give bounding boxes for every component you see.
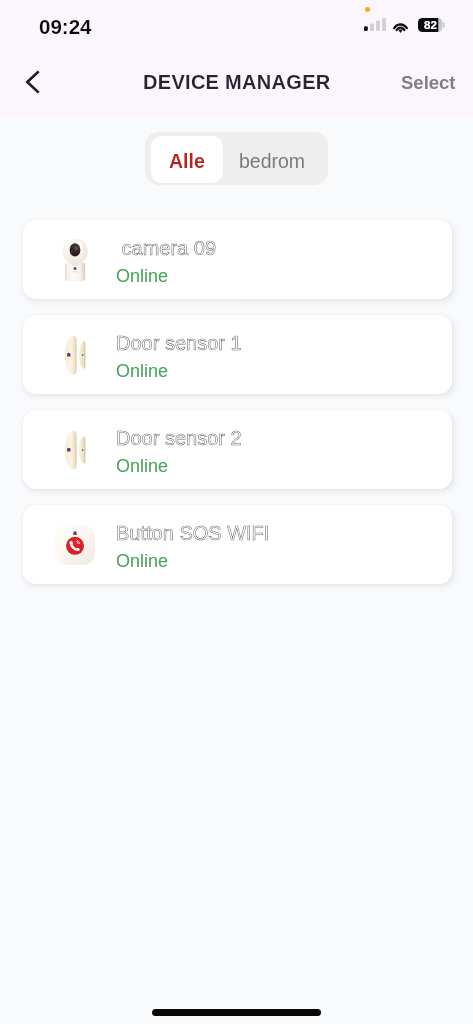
staticText: Online [116, 266, 169, 286]
staticText: Door sensor 2 [116, 427, 242, 449]
button[interactable]: camera 09 [23, 220, 452, 299]
staticText: 09:24 [39, 15, 92, 38]
staticText: Online [116, 456, 169, 476]
staticText: Door sensor 1 [116, 332, 242, 354]
button[interactable]: Button SOS WIFI [23, 505, 452, 584]
button[interactable]: Back [10, 59, 54, 105]
staticText: Button SOS WIFI [116, 522, 270, 544]
button[interactable]: Door sensor 1 [23, 315, 452, 394]
staticText: camera 09 [116, 237, 217, 259]
staticText: Select [401, 72, 456, 93]
staticText: Online [116, 361, 169, 381]
staticText: Online [116, 551, 169, 571]
button[interactable]: bedrom [223, 132, 322, 185]
staticText: 82 [424, 19, 437, 32]
staticText: bedrom [239, 150, 306, 172]
button[interactable]: Alle [151, 136, 223, 183]
button[interactable]: Select [387, 59, 473, 105]
button[interactable]: Door sensor 2 [23, 410, 452, 489]
staticText: Alle [169, 150, 205, 172]
staticText: DEVICE MANAGER [143, 71, 331, 93]
